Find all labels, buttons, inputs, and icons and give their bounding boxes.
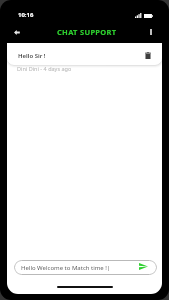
staticText: Dini Dini - 4 days ago [17,65,72,72]
staticText: Hello Welcome to Match time !| [21,264,137,272]
button[interactable]: Delete [142,49,154,61]
button[interactable]: Hello Welcome to Match time !| [14,260,157,275]
button[interactable]: Hello Sir ! [7,43,162,65]
button[interactable]: Send [137,260,149,272]
staticText: 10:16 [18,11,34,19]
staticText: Hello Sir ! [18,52,46,60]
staticText: CHAT SUPPORT [57,27,117,37]
button[interactable]: Back [9,24,25,40]
button[interactable]: More options [144,25,158,39]
